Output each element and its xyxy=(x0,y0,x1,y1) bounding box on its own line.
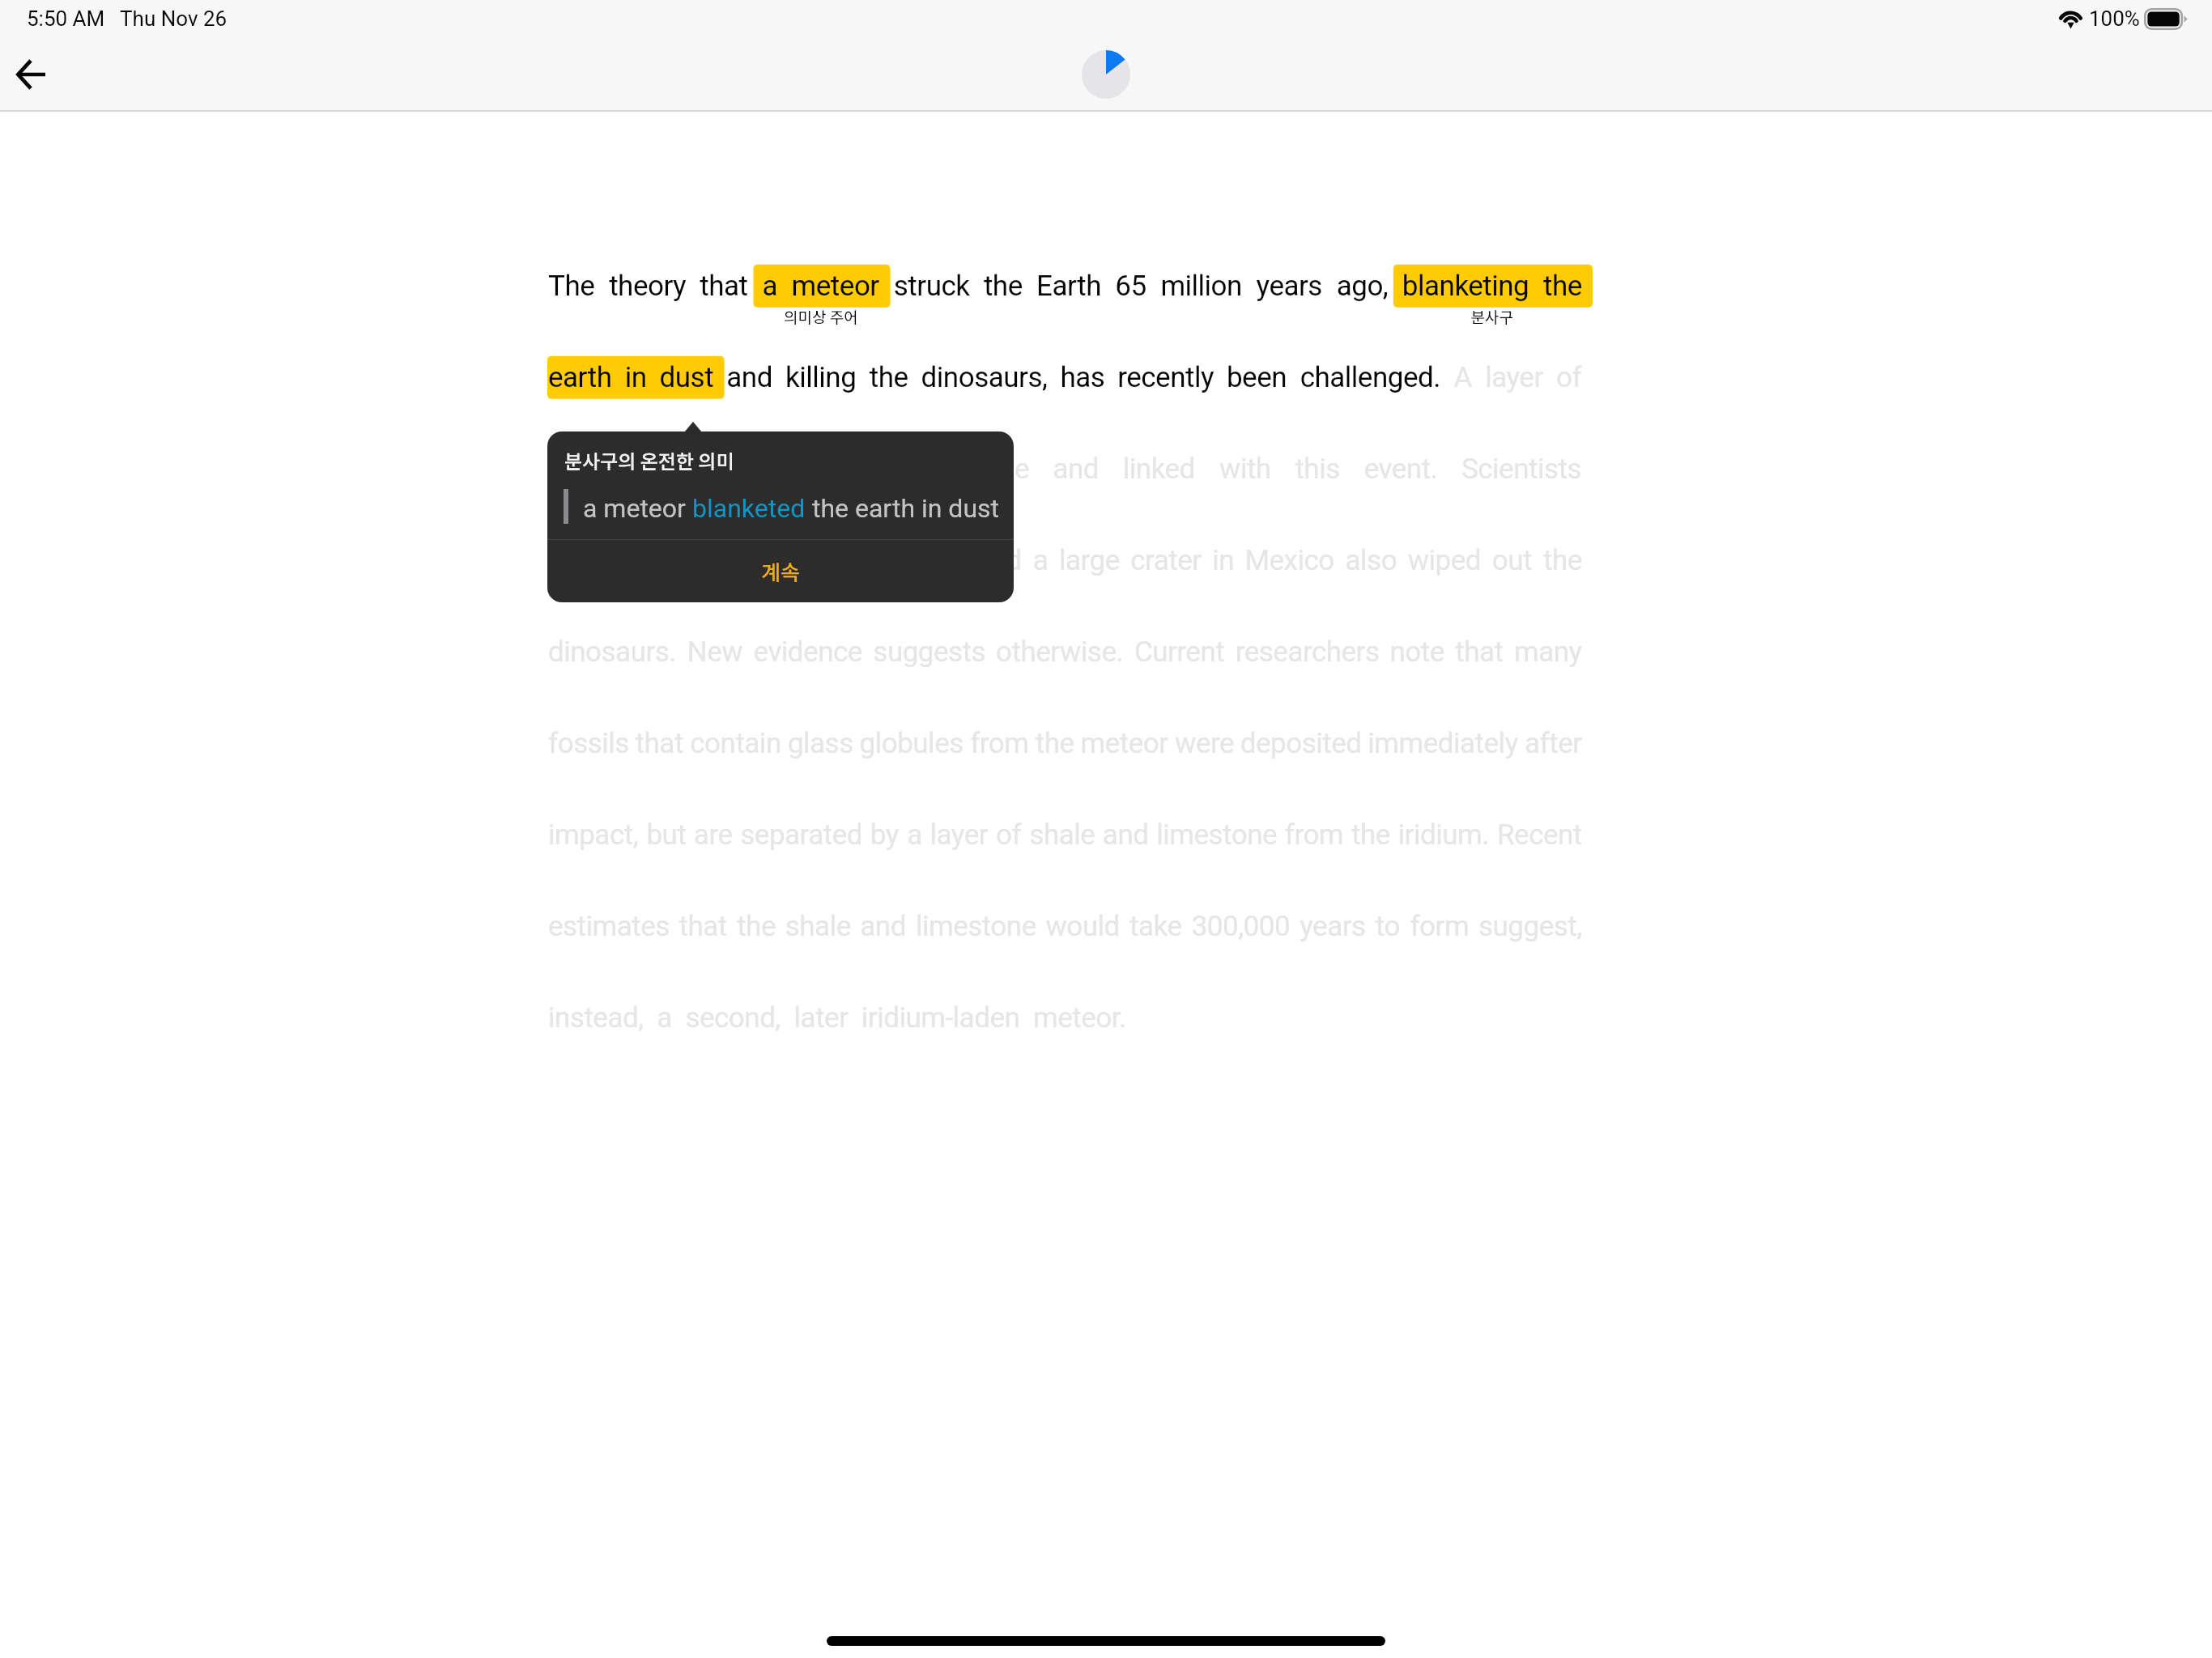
button[interactable]: 계속 xyxy=(547,540,1014,602)
button[interactable]: earth in dust xyxy=(547,356,724,399)
staticText: the earth in dust xyxy=(806,493,1000,524)
staticText: a meteor xyxy=(583,493,692,524)
staticText: blanketed xyxy=(692,493,806,524)
button[interactable]: a meteor xyxy=(754,265,890,308)
button[interactable]: Reading progress xyxy=(1082,50,1130,99)
button[interactable]: Back xyxy=(16,60,45,89)
staticText: 5:50 AM Thu Nov 26 xyxy=(27,6,228,31)
button[interactable]: blanketing the xyxy=(1393,265,1593,308)
staticText: 100% xyxy=(2089,6,2140,31)
staticText: 분사구의 온전한 의미 xyxy=(564,446,734,474)
staticText: 계속 xyxy=(761,556,800,587)
